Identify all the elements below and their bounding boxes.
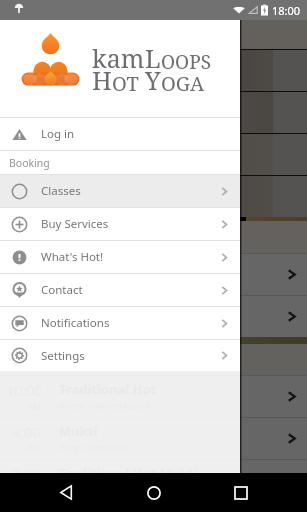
button[interactable]: Notifications: [0, 307, 240, 339]
staticText: Traditional Hot: [64, 259, 162, 277]
button[interactable]: [0, 175, 307, 217]
staticText: Classes: [41, 183, 81, 199]
button[interactable]: Back: [44, 473, 88, 512]
button[interactable]: [0, 91, 307, 133]
staticText: Karla Gray: [59, 484, 101, 496]
staticText: PM: [40, 320, 54, 332]
button[interactable]: 4:00: [0, 417, 307, 459]
staticText: Buy Services: [41, 216, 109, 232]
staticText: OOPS: [161, 49, 212, 75]
button[interactable]: Log in: [0, 118, 240, 150]
staticText: Karla Gray (Sub): [64, 278, 125, 289]
button[interactable]: 7:00: [0, 459, 240, 501]
button[interactable]: [0, 49, 307, 91]
button[interactable]: Recent apps: [219, 473, 263, 512]
staticText: 7:00: [26, 465, 54, 484]
staticText: [139, 67, 145, 97]
button[interactable]: 10:00: [0, 253, 307, 295]
button[interactable]: 10:00: [0, 375, 307, 417]
staticText: Robyn Elliott (Sub): [64, 320, 133, 331]
staticText: AM: [40, 278, 54, 290]
staticText: 18:00: [272, 3, 301, 18]
staticText: 7:00: [12, 464, 41, 484]
staticText: Traditional Hot Mukti: [64, 465, 203, 483]
staticText: Karla Gray: [64, 484, 103, 495]
button[interactable]: Contact: [0, 274, 240, 306]
staticText: L: [145, 41, 161, 75]
staticText: Settings: [41, 348, 85, 364]
staticText: Log in: [41, 126, 75, 142]
button[interactable]: Home: [132, 473, 176, 512]
staticText: kam: [92, 41, 145, 75]
staticText: Mukti: [64, 301, 103, 319]
button[interactable]: Settings: [0, 340, 240, 371]
staticText: 4:00: [26, 301, 54, 320]
staticText: Contact: [41, 282, 83, 298]
staticText: Notifications: [41, 315, 110, 331]
staticText: OT: [112, 70, 139, 97]
button[interactable]: Classes: [0, 175, 240, 207]
staticText: What's Hot!: [41, 249, 104, 265]
staticText: Traditional Hot Mukti: [59, 464, 198, 482]
staticText: 10:00: [18, 259, 54, 278]
staticText: OGA: [161, 70, 205, 97]
button[interactable]: 4:00: [0, 295, 307, 337]
staticText: Y: [145, 63, 161, 97]
button[interactable]: Buy Services: [0, 208, 240, 240]
staticText: H: [92, 63, 112, 97]
button[interactable]: [0, 133, 307, 175]
button[interactable]: 7:00: [0, 459, 307, 501]
staticText: Booking: [9, 156, 50, 170]
button[interactable]: What's Hot!: [0, 241, 240, 273]
